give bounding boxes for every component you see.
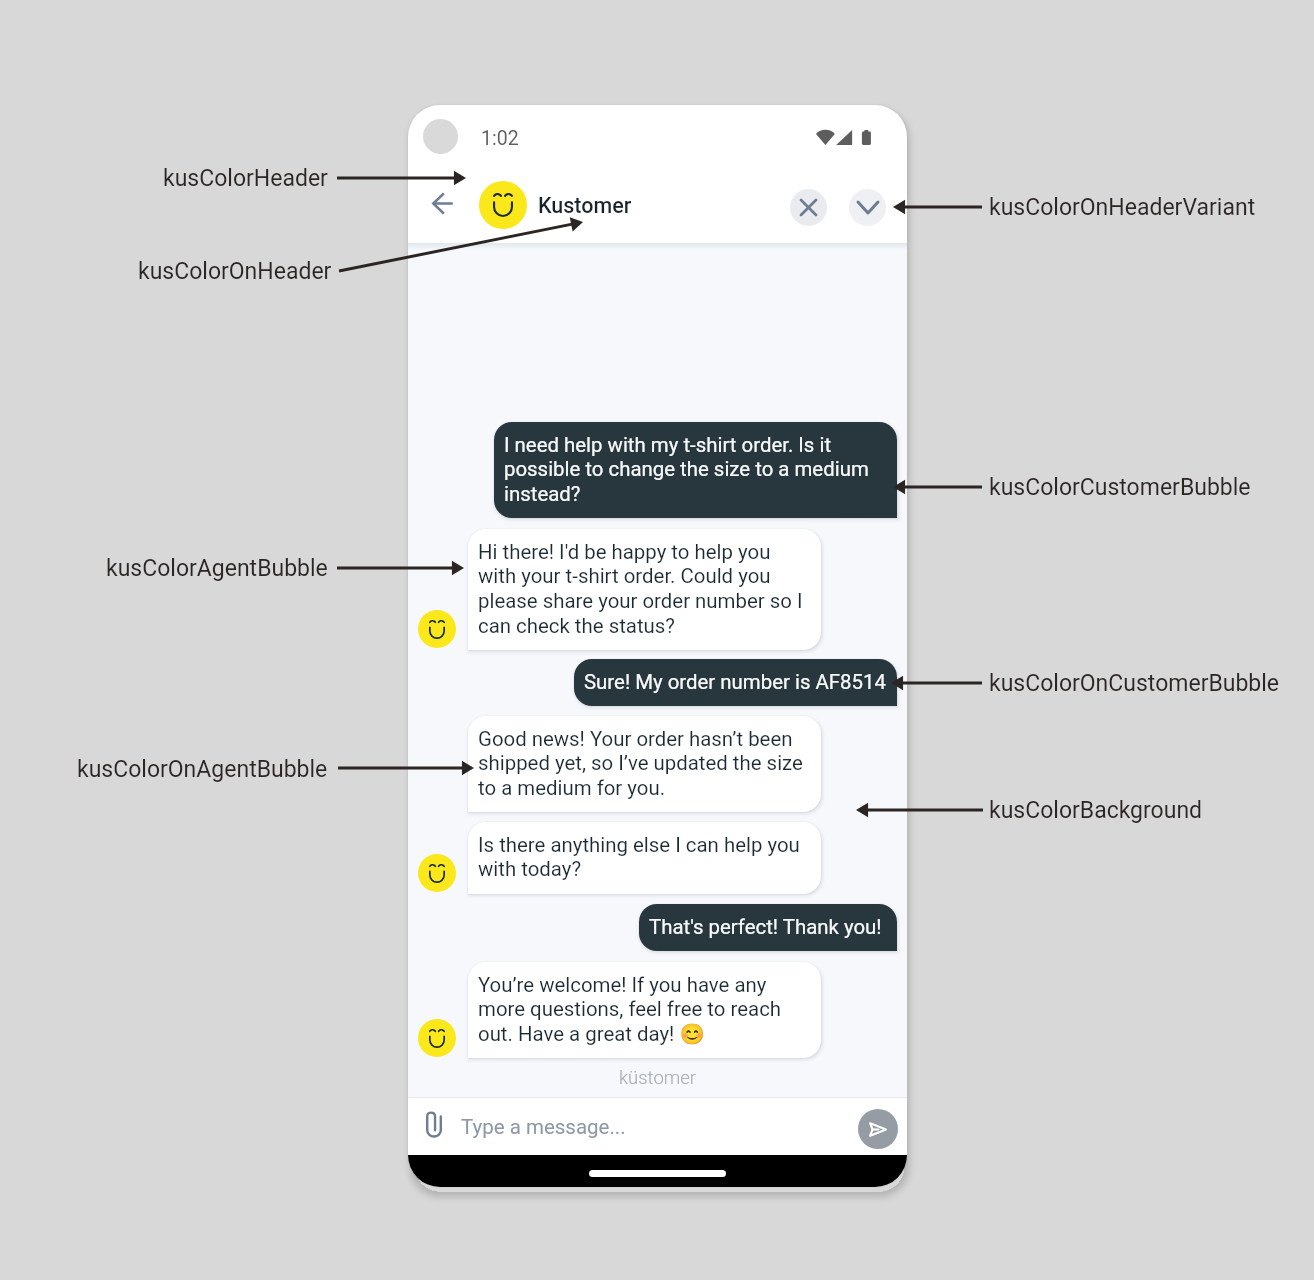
button[interactable]: You’re welcome! If you have any more que… xyxy=(468,962,821,1058)
staticText: kusColorOnCustomerBubble xyxy=(989,670,1280,697)
button[interactable]: Minimize conversation xyxy=(849,189,886,226)
staticText: Is there anything else I can help you wi… xyxy=(478,833,800,881)
staticText: küstomer xyxy=(619,1067,696,1089)
staticText: Type a message... xyxy=(461,1115,626,1139)
staticText: kusColorHeader xyxy=(163,165,328,192)
staticText: Good news! Your order hasn’t been shippe… xyxy=(478,727,803,800)
button[interactable]: Hi there! I'd be happy to help you with … xyxy=(468,529,821,650)
staticText: Kustomer xyxy=(538,193,632,218)
staticText: kusColorBackground xyxy=(989,797,1203,824)
button[interactable]: Close conversation xyxy=(790,189,827,226)
staticText: Sure! My order number is AF8514 xyxy=(584,670,886,694)
staticText: That's perfect! Thank you! xyxy=(649,915,882,939)
staticText: kusColorOnHeaderVariant xyxy=(989,194,1256,221)
staticText: kusColorCustomerBubble xyxy=(989,474,1251,501)
staticText: I need help with my t-shirt order. Is it… xyxy=(504,433,869,506)
staticText: kusColorOnHeader xyxy=(138,258,332,285)
staticText: Hi there! I'd be happy to help you with … xyxy=(478,540,803,638)
staticText: You’re welcome! If you have any more que… xyxy=(478,973,782,1046)
button[interactable]: Is there anything else I can help you wi… xyxy=(468,822,821,894)
staticText: kusColorAgentBubble xyxy=(106,555,328,582)
button[interactable]: That's perfect! Thank you! xyxy=(639,904,897,951)
staticText: kusColorOnAgentBubble xyxy=(77,756,328,783)
button[interactable]: Sure! My order number is AF8514 xyxy=(574,659,897,706)
button[interactable]: I need help with my t-shirt order. Is it… xyxy=(494,422,897,518)
button[interactable]: Attach file xyxy=(416,1105,452,1141)
button[interactable]: Send message xyxy=(858,1109,898,1149)
staticText: 1:02 xyxy=(481,127,519,150)
button[interactable]: Back xyxy=(420,181,464,225)
button[interactable]: Good news! Your order hasn’t been shippe… xyxy=(468,716,821,812)
